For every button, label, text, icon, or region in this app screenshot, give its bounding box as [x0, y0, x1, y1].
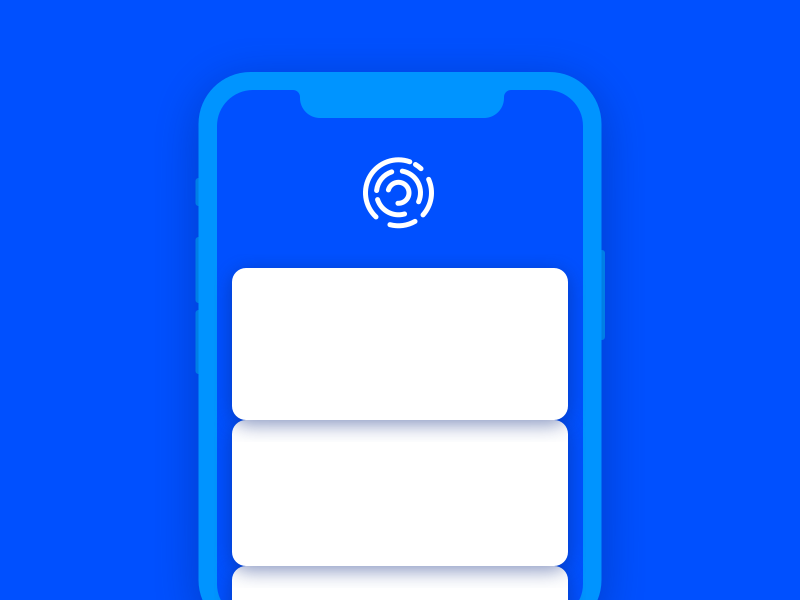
button[interactable]	[232, 420, 568, 566]
button[interactable]	[232, 268, 568, 420]
button[interactable]	[232, 566, 568, 600]
